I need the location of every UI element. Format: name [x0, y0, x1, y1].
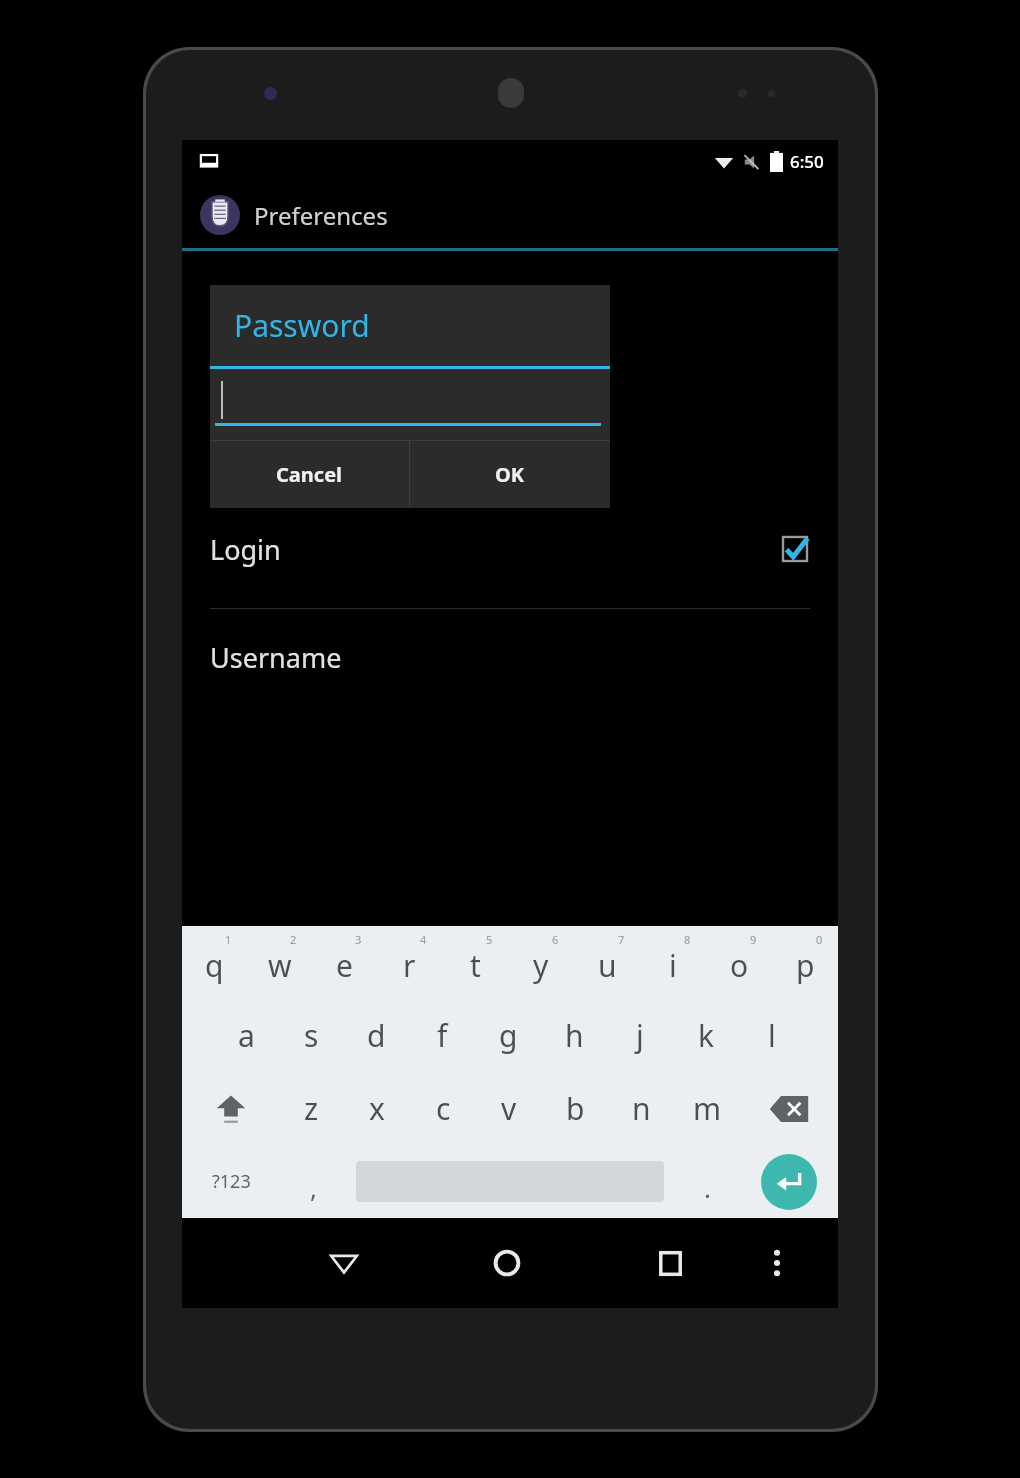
staticText: 0	[816, 932, 823, 947]
staticText: s	[304, 1015, 319, 1056]
button[interactable]: l	[739, 999, 805, 1072]
button[interactable]: OK	[410, 441, 610, 508]
button[interactable]: 9	[706, 926, 772, 999]
staticText: a	[238, 1015, 255, 1056]
button[interactable]: Back	[293, 1218, 395, 1308]
staticText: ?123	[212, 1169, 251, 1194]
staticText: y	[533, 945, 549, 986]
button[interactable]: 5	[442, 926, 508, 999]
button[interactable]: Backspace	[740, 1072, 838, 1145]
staticText: 2	[290, 932, 297, 947]
staticText: l	[768, 1015, 776, 1056]
button[interactable]: Cancel	[210, 441, 409, 508]
staticText: Preferences	[254, 199, 388, 232]
button[interactable]: Recents	[619, 1218, 721, 1308]
staticText: t	[470, 945, 481, 986]
button[interactable]: Enter	[740, 1145, 838, 1218]
button[interactable]: Home	[456, 1218, 558, 1308]
staticText: z	[304, 1088, 319, 1129]
staticText: m	[693, 1088, 722, 1129]
button[interactable]: b	[542, 1072, 608, 1145]
button[interactable]: 3	[312, 926, 377, 999]
staticText: q	[205, 945, 224, 986]
staticText: x	[369, 1088, 385, 1129]
staticText: c	[436, 1088, 451, 1129]
button[interactable]: m	[674, 1072, 740, 1145]
staticText: Hostname or IP	[210, 277, 409, 314]
staticText: f	[437, 1015, 448, 1056]
button[interactable]: a	[214, 999, 279, 1072]
button[interactable]: 4	[377, 926, 442, 999]
button[interactable]: 2	[247, 926, 312, 999]
button[interactable]: 0	[772, 926, 838, 999]
button[interactable]: x	[344, 1072, 410, 1145]
staticText: OK	[495, 461, 525, 488]
button[interactable]: c	[410, 1072, 476, 1145]
button[interactable]: ?123	[182, 1145, 280, 1218]
button[interactable]: More options	[746, 1218, 807, 1308]
staticText: 8	[684, 932, 691, 947]
staticText: ,	[310, 1170, 317, 1205]
staticText: h	[565, 1015, 584, 1056]
other: App icon	[200, 195, 240, 235]
staticText: w	[268, 945, 292, 986]
staticText: o	[730, 945, 749, 986]
staticText: g	[499, 1015, 518, 1056]
staticText: .	[704, 1170, 711, 1205]
button[interactable]: Space	[346, 1161, 674, 1202]
staticText: Password	[234, 305, 370, 346]
button[interactable]: 1	[182, 926, 247, 999]
button[interactable]: ,	[280, 1145, 346, 1218]
button[interactable]: Shift	[182, 1072, 279, 1145]
staticText: Cancel	[276, 461, 343, 488]
staticText: e	[336, 945, 353, 986]
staticText: k	[698, 1015, 715, 1056]
staticText: b	[566, 1088, 585, 1129]
button[interactable]: j	[607, 999, 673, 1072]
button[interactable]: v	[476, 1072, 542, 1145]
staticText: Login	[210, 531, 281, 568]
button[interactable]: h	[541, 999, 607, 1072]
staticText: p	[796, 945, 815, 986]
staticText: 6	[552, 932, 559, 947]
button[interactable]: .	[674, 1145, 740, 1218]
staticText: Username	[210, 639, 342, 676]
button[interactable]: d	[344, 999, 409, 1072]
staticText: 3	[355, 932, 362, 947]
button[interactable]: Hostname or IP	[182, 277, 838, 314]
staticText: d	[367, 1015, 386, 1056]
staticText: 5	[486, 932, 493, 947]
staticText: 4	[420, 932, 427, 947]
button[interactable]: 7	[574, 926, 640, 999]
staticText: 6:50	[790, 150, 824, 173]
staticText: 7	[618, 932, 625, 947]
staticText: 1	[225, 932, 232, 947]
button[interactable]: Username	[182, 639, 838, 676]
button[interactable]: App icon	[182, 182, 838, 248]
staticText: i	[669, 945, 677, 986]
staticText: j	[636, 1015, 644, 1056]
button[interactable]: k	[673, 999, 739, 1072]
staticText: v	[501, 1088, 517, 1129]
staticText: n	[632, 1088, 651, 1129]
button[interactable]: g	[475, 999, 541, 1072]
button[interactable]: Login	[182, 520, 838, 578]
staticText: u	[598, 945, 617, 986]
button[interactable]: 6	[508, 926, 574, 999]
button[interactable]: 8	[640, 926, 706, 999]
staticText: r	[403, 945, 416, 986]
button[interactable]: f	[409, 999, 475, 1072]
button[interactable]: z	[279, 1072, 344, 1145]
staticText: 9	[750, 932, 757, 947]
button[interactable]: s	[279, 999, 344, 1072]
button[interactable]: n	[608, 1072, 674, 1145]
